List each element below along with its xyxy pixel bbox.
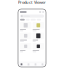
button[interactable]	[20, 32, 31, 42]
button[interactable]	[33, 22, 44, 31]
button[interactable]	[33, 43, 44, 52]
button[interactable]	[20, 43, 31, 52]
button[interactable]	[20, 22, 31, 31]
button[interactable]: Filter	[31, 19, 36, 21]
button[interactable]: Saved	[32, 62, 39, 67]
button[interactable]	[20, 14, 44, 18]
button[interactable]: Shop	[18, 62, 25, 67]
button[interactable]	[33, 32, 44, 42]
button[interactable]: Filter	[20, 19, 25, 21]
button[interactable]: Filter	[26, 19, 30, 21]
button[interactable]: Search	[25, 62, 32, 67]
button[interactable]: Filter	[37, 19, 41, 21]
staticText: Product Viewer	[18, 0, 46, 5]
button[interactable]: Bag	[39, 62, 46, 67]
button[interactable]: Account	[42, 11, 44, 13]
